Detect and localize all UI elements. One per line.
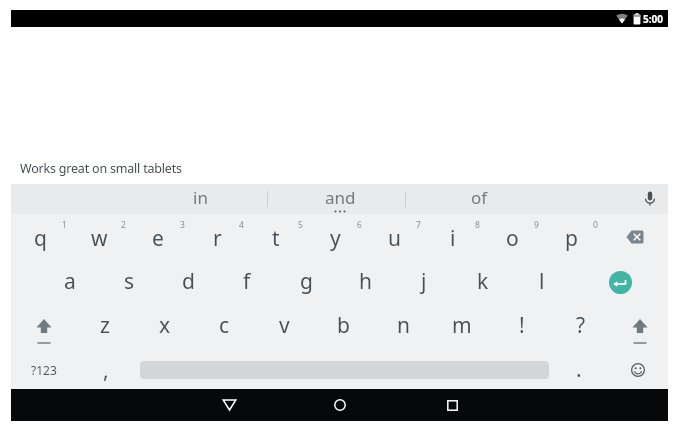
button[interactable]: u	[365, 216, 423, 260]
staticText: ,	[103, 356, 109, 385]
button[interactable]: q	[11, 216, 69, 260]
staticText: Works great on small tablets	[20, 160, 182, 177]
staticText: o	[506, 224, 519, 253]
staticText: y	[330, 224, 341, 253]
staticText: u	[388, 224, 401, 253]
button[interactable]	[541, 260, 668, 304]
button[interactable]: .	[550, 347, 608, 391]
button[interactable]: z	[76, 303, 134, 347]
button[interactable]	[608, 350, 668, 390]
staticText: j	[421, 267, 427, 296]
staticText: 7	[416, 219, 421, 231]
staticText: 1	[62, 219, 67, 231]
button[interactable]	[135, 347, 548, 389]
staticText: 5	[298, 219, 303, 231]
button[interactable]	[635, 184, 665, 214]
button[interactable]: a	[41, 259, 99, 303]
staticText: i	[450, 224, 456, 253]
staticText: and	[325, 186, 356, 209]
button[interactable]: o	[483, 216, 541, 260]
button[interactable]: l	[513, 259, 571, 303]
staticText: 3	[180, 219, 185, 231]
staticText: 8	[475, 219, 480, 231]
staticText: l	[539, 267, 545, 296]
staticText: d	[182, 267, 195, 296]
staticText: h	[359, 267, 372, 296]
button[interactable]: y	[306, 216, 364, 260]
button[interactable]	[315, 389, 365, 421]
staticText: 2	[121, 219, 126, 231]
staticText: 0	[593, 219, 598, 231]
button[interactable]: i	[424, 216, 482, 260]
staticText: m	[452, 311, 472, 340]
staticText: k	[477, 267, 489, 296]
staticText: ?	[576, 311, 586, 340]
staticText: w	[91, 224, 108, 253]
button[interactable]: x	[136, 303, 194, 347]
button[interactable]: !	[493, 303, 551, 347]
staticText: of	[471, 186, 488, 209]
staticText: a	[64, 267, 76, 296]
button[interactable]: f	[218, 259, 276, 303]
button[interactable]: p	[542, 216, 600, 260]
staticText: g	[300, 267, 313, 296]
button[interactable]: j	[395, 259, 453, 303]
button[interactable]: r	[188, 216, 246, 260]
button[interactable]: in	[160, 184, 240, 210]
button[interactable]: n	[374, 303, 432, 347]
staticText: q	[34, 224, 47, 253]
button[interactable]: e	[129, 216, 187, 260]
staticText: ?123	[31, 362, 57, 378]
button[interactable]: t	[247, 216, 305, 260]
button[interactable]: c	[195, 303, 253, 347]
button[interactable]: v	[255, 303, 313, 347]
button[interactable]: s	[100, 259, 158, 303]
staticText: z	[100, 311, 110, 340]
button[interactable]: g	[277, 259, 335, 303]
staticText: r	[213, 224, 222, 253]
button[interactable]: b	[314, 303, 372, 347]
staticText: b	[337, 311, 350, 340]
button[interactable]: d	[159, 259, 217, 303]
button[interactable]	[606, 306, 669, 347]
button[interactable]: m	[433, 303, 491, 347]
button[interactable]: ,	[77, 348, 135, 392]
staticText: in	[193, 186, 208, 209]
staticText: 9	[534, 219, 539, 231]
button[interactable]: ?	[552, 303, 610, 347]
staticText: v	[279, 311, 290, 340]
button[interactable]: ?123	[11, 348, 76, 392]
staticText: x	[159, 311, 171, 340]
button[interactable]	[204, 389, 254, 421]
staticText: s	[124, 267, 135, 296]
button[interactable]: k	[454, 259, 512, 303]
button[interactable]	[11, 306, 76, 347]
button[interactable]: of	[439, 184, 519, 210]
staticText: 4	[239, 219, 244, 231]
staticText: n	[397, 311, 410, 340]
staticText: 6	[357, 219, 362, 231]
staticText: c	[219, 311, 230, 340]
button[interactable]: h	[336, 259, 394, 303]
staticText: p	[565, 224, 578, 253]
button[interactable]: w	[70, 216, 128, 260]
staticText: t	[272, 224, 280, 253]
staticText: !	[519, 311, 525, 340]
button[interactable]: and	[300, 184, 380, 210]
staticText: e	[152, 224, 164, 253]
staticText: 5:00	[643, 12, 663, 26]
button[interactable]	[427, 389, 477, 421]
staticText: .	[576, 355, 582, 384]
button[interactable]	[602, 216, 668, 258]
staticText: f	[243, 267, 251, 296]
